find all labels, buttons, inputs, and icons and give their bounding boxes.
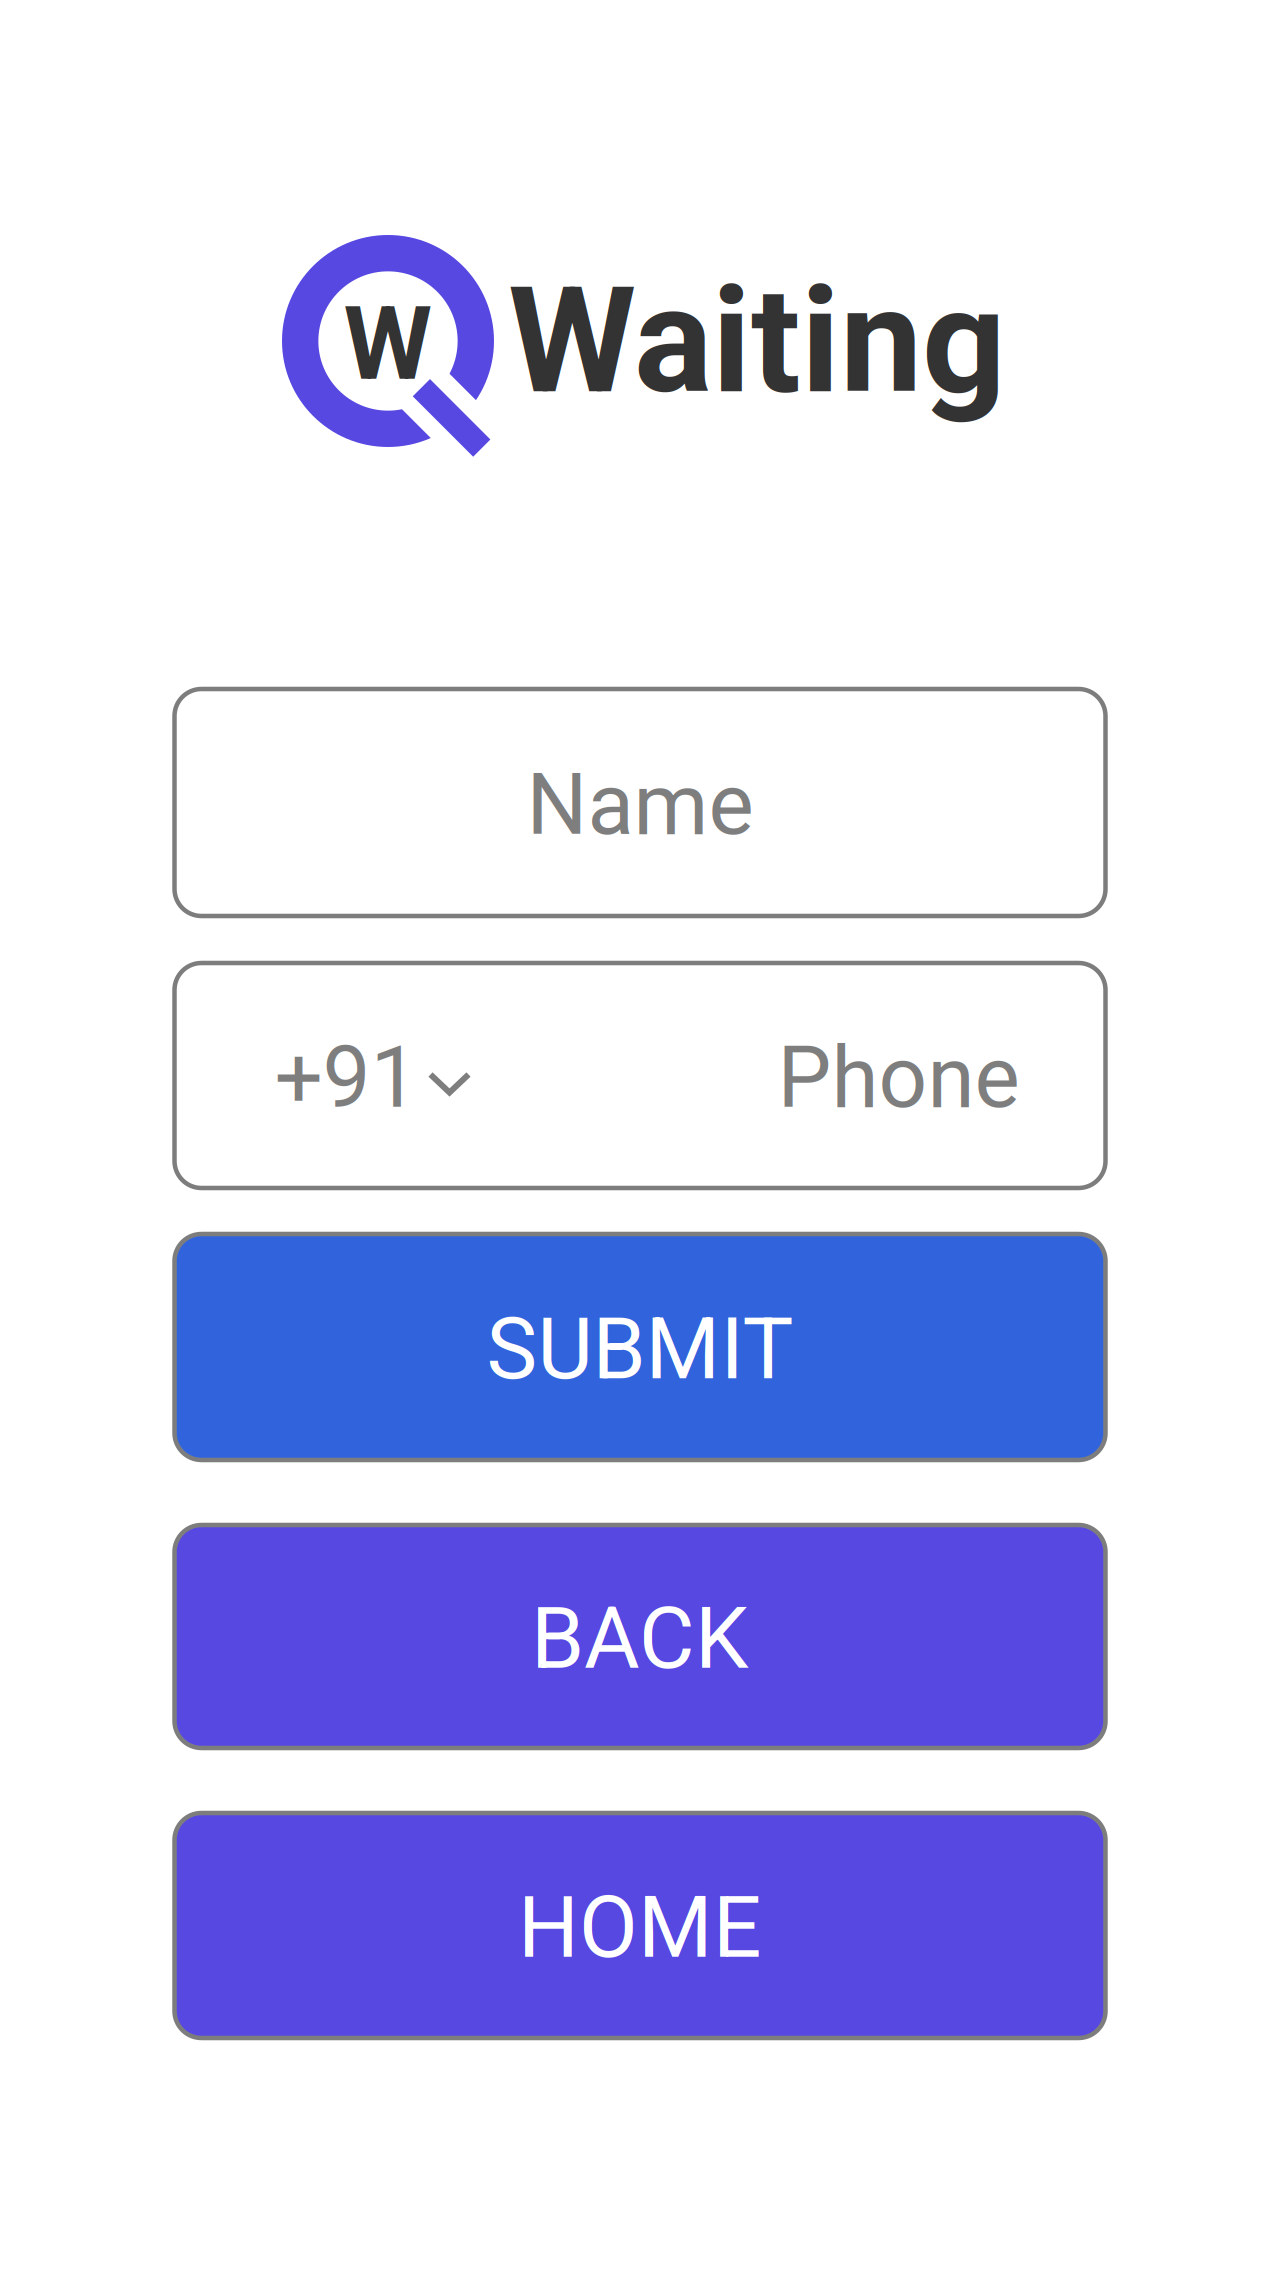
staticText: SUBMIT xyxy=(486,1299,793,1399)
staticText: Phone xyxy=(777,1027,1019,1127)
button[interactable]: Name xyxy=(174,689,1105,916)
staticText: Waiting xyxy=(508,255,1006,427)
button[interactable]: HOME xyxy=(174,1813,1105,2038)
staticText: W xyxy=(343,285,432,403)
staticText: HOME xyxy=(518,1877,762,1977)
button[interactable]: SUBMIT xyxy=(174,1234,1105,1460)
staticText: Name xyxy=(526,754,753,854)
staticText: BACK xyxy=(531,1588,749,1688)
button[interactable]: Country code +91 xyxy=(174,963,488,1188)
button[interactable]: BACK xyxy=(174,1525,1105,1748)
staticText: +91 xyxy=(274,1027,418,1127)
button[interactable]: Phone xyxy=(174,963,1105,1188)
